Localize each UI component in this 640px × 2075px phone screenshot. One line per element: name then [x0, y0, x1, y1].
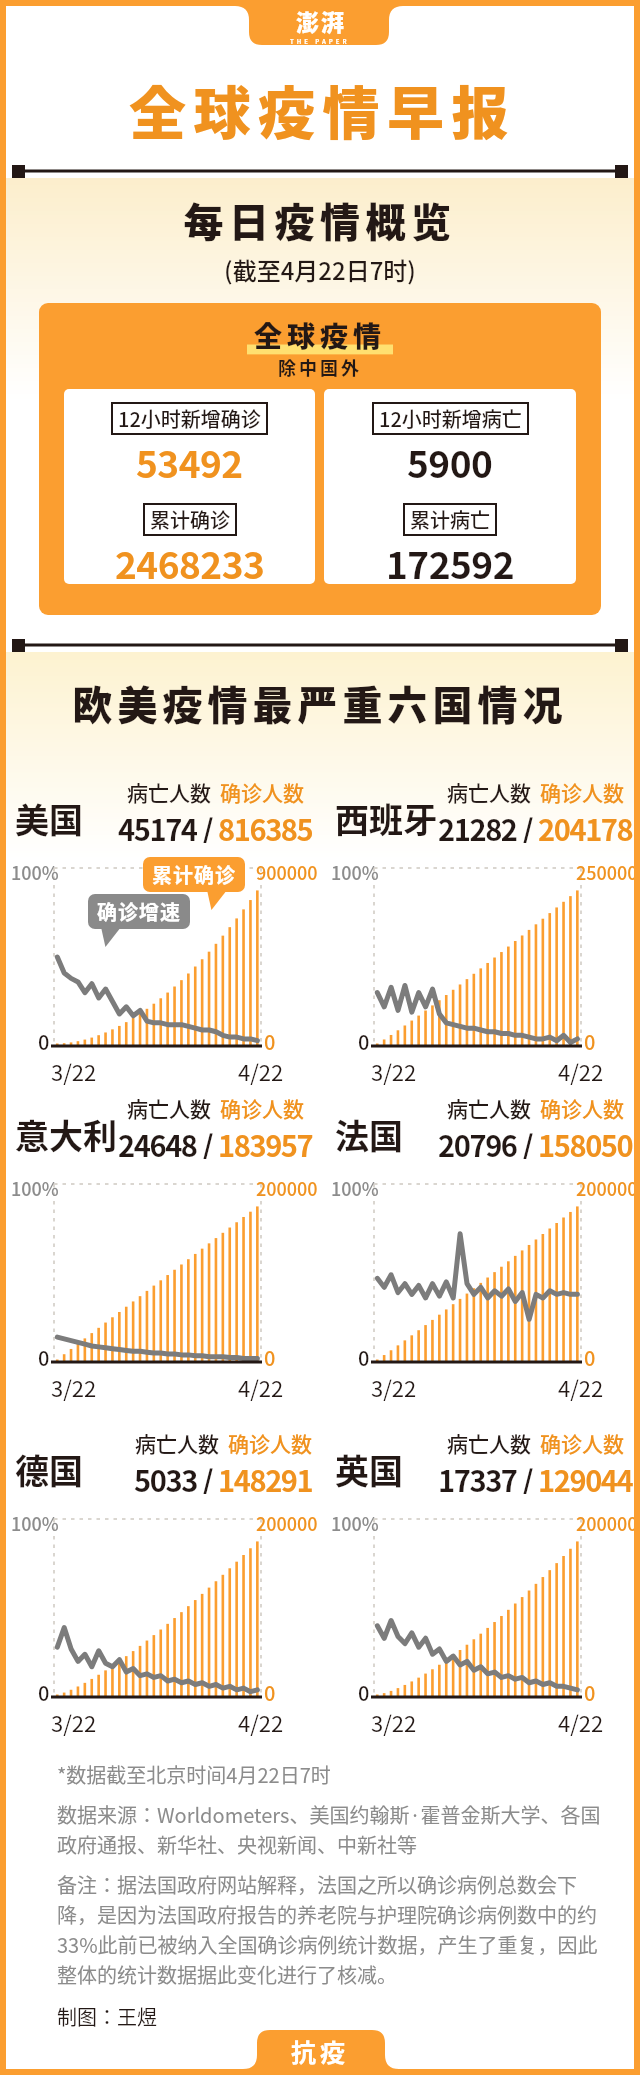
staticText: 3/22 — [51, 1371, 97, 1403]
staticText: 0 — [38, 1343, 50, 1372]
staticText: 病亡人数 — [447, 1093, 531, 1123]
staticText: 158050 — [538, 1123, 633, 1159]
staticText: 0 — [264, 1027, 276, 1056]
staticText: 172592 — [386, 536, 514, 584]
staticText: 欧美疫情最严重六国情况 — [0, 674, 640, 732]
staticText: / — [197, 1123, 218, 1159]
staticText: 0 — [264, 1343, 276, 1372]
button[interactable]: 12小时新增确诊 — [64, 389, 315, 584]
staticText: 0 — [358, 1027, 370, 1056]
staticText: 抗疫 — [291, 2033, 350, 2069]
staticText: 5033 — [134, 1458, 197, 1494]
staticText: *数据截至北京时间4月22日7时 — [57, 1760, 331, 1789]
staticText: 3/22 — [371, 1706, 417, 1738]
staticText: 12小时新增病亡 — [379, 404, 522, 433]
staticText: 4/22 — [558, 1371, 604, 1403]
staticText: 3/22 — [371, 1055, 417, 1087]
staticText: 确诊人数 — [540, 1093, 624, 1123]
staticText: 除中国外 — [39, 354, 601, 380]
staticText: 病亡人数 — [447, 777, 531, 807]
staticText: 100% — [11, 1510, 59, 1536]
staticText: 法国 — [335, 1110, 403, 1159]
staticText: 0 — [38, 1678, 50, 1707]
staticText: 澎湃 — [295, 4, 345, 37]
staticText: 4/22 — [558, 1055, 604, 1087]
staticText: 100% — [11, 859, 59, 885]
staticText: 德国 — [15, 1445, 83, 1494]
staticText: 确诊人数 — [540, 1428, 624, 1458]
staticText: 病亡人数 — [127, 1093, 211, 1123]
staticText: 100% — [331, 859, 379, 885]
staticText: / — [197, 1458, 218, 1494]
staticText: 0 — [358, 1678, 370, 1707]
staticText: 确诊人数 — [220, 777, 304, 807]
staticText: 200000 — [576, 1510, 638, 1536]
staticText: 意大利 — [15, 1110, 117, 1159]
staticText: 129044 — [538, 1458, 633, 1494]
staticText: 3/22 — [51, 1055, 97, 1087]
staticText: 17337 — [438, 1458, 517, 1494]
staticText: 0 — [358, 1343, 370, 1372]
staticText: 0 — [38, 1027, 50, 1056]
staticText: / — [197, 807, 218, 843]
staticText: 病亡人数 — [127, 777, 211, 807]
staticText: 英国 — [335, 1445, 403, 1494]
staticText: 4/22 — [238, 1371, 284, 1403]
staticText: 3/22 — [51, 1706, 97, 1738]
staticText: 0 — [584, 1343, 596, 1372]
staticText: 4/22 — [558, 1706, 604, 1738]
staticText: 20796 — [438, 1123, 517, 1159]
staticText: 816385 — [218, 807, 313, 843]
staticText: 累计确诊 — [152, 860, 236, 889]
button[interactable]: 12小时新增病亡 — [324, 389, 576, 584]
staticText: 确诊人数 — [540, 777, 624, 807]
staticText: 累计病亡 — [410, 505, 490, 534]
staticText: 累计确诊 — [150, 505, 230, 534]
staticText: 200000 — [256, 1510, 318, 1536]
staticText: 53492 — [136, 435, 243, 489]
staticText: 全球疫情早报 — [129, 68, 516, 151]
staticText: 204178 — [538, 807, 633, 843]
staticText: 数据来源：Worldometers、美国约翰斯·霍普金斯大学、各国政府通报、新华… — [57, 1800, 602, 1859]
staticText: 100% — [331, 1510, 379, 1536]
staticText: 4/22 — [238, 1706, 284, 1738]
staticText: 美国 — [15, 794, 83, 843]
staticText: 21282 — [438, 807, 517, 843]
staticText: 250000 — [576, 859, 638, 885]
staticText: 900000 — [256, 859, 318, 885]
staticText: 200000 — [576, 1175, 638, 1201]
staticText: 100% — [11, 1175, 59, 1201]
staticText: 24648 — [118, 1123, 197, 1159]
staticText: (截至4月22日7时) — [0, 252, 640, 287]
staticText: 备注：据法国政府网站解释，法国之所以确诊病例总数会下降，是因为法国政府报告的养老… — [57, 1870, 602, 1989]
staticText: 病亡人数 — [447, 1428, 531, 1458]
staticText: 183957 — [218, 1123, 313, 1159]
staticText: THE PAPER — [290, 37, 350, 46]
staticText: 病亡人数 — [135, 1428, 219, 1458]
staticText: / — [517, 1123, 538, 1159]
staticText: 45174 — [118, 807, 197, 843]
staticText: 0 — [584, 1027, 596, 1056]
staticText: 制图：王煜 — [57, 2002, 157, 2031]
staticText: 3/22 — [371, 1371, 417, 1403]
staticText: 12小时新增确诊 — [118, 404, 261, 433]
staticText: 全球疫情 — [254, 315, 387, 356]
staticText: 148291 — [218, 1458, 313, 1494]
staticText: 0 — [584, 1678, 596, 1707]
staticText: 西班牙 — [335, 794, 437, 843]
staticText: 确诊人数 — [228, 1428, 312, 1458]
staticText: 每日疫情概览 — [0, 191, 640, 249]
staticText: 确诊增速 — [97, 897, 181, 926]
staticText: 100% — [331, 1175, 379, 1201]
staticText: 4/22 — [238, 1055, 284, 1087]
staticText: 确诊人数 — [220, 1093, 304, 1123]
staticText: 2468233 — [115, 536, 265, 584]
staticText: / — [517, 1458, 538, 1494]
staticText: 200000 — [256, 1175, 318, 1201]
staticText: 0 — [264, 1678, 276, 1707]
button[interactable]: 澎湃 — [282, 4, 358, 46]
staticText: / — [517, 807, 538, 843]
staticText: 5900 — [407, 435, 493, 489]
